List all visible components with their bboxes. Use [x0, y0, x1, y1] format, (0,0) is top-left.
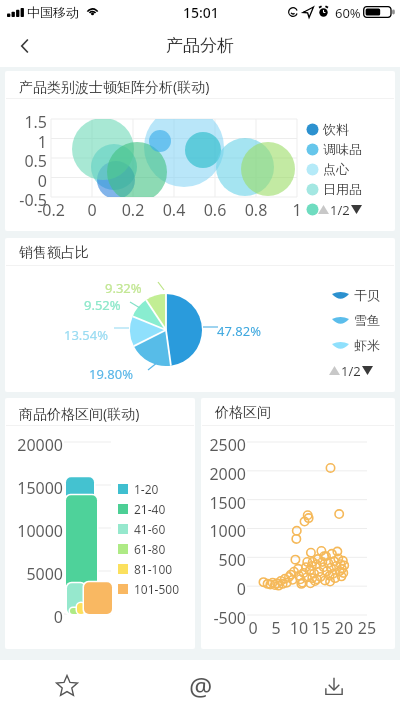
staticText: 日用品 — [323, 181, 362, 197]
staticText: 点心 — [323, 161, 349, 177]
staticText: 0 — [201, 578, 246, 600]
staticText: 产品类别波士顿矩阵分析(联动) — [19, 77, 210, 96]
staticText: 0.6 — [195, 199, 235, 221]
staticText: 15 — [306, 617, 336, 639]
staticText: 2500 — [201, 434, 246, 456]
staticText: 商品价格区间(联动) — [19, 404, 140, 423]
staticText: 0 — [238, 617, 268, 639]
staticText: 9.32% — [105, 279, 142, 297]
staticText: 500 — [201, 549, 246, 571]
staticText: 0.5 — [5, 150, 47, 172]
staticText: 0.8 — [236, 199, 276, 221]
button[interactable]: Page 1 of 2 — [317, 201, 363, 217]
button[interactable]: 产品类别波士顿矩阵分析(联动) — [5, 71, 395, 231]
button[interactable]: Favorite — [0, 660, 134, 711]
staticText: 中国移动 — [27, 4, 79, 20]
button[interactable]: 价格区间 — [201, 398, 395, 649]
staticText: 1000 — [201, 520, 246, 542]
staticText: 虾米 — [354, 337, 380, 353]
staticText: 47.82% — [217, 322, 262, 340]
staticText: 0 — [72, 199, 112, 221]
staticText: 价格区间 — [215, 404, 271, 422]
staticText: 9.52% — [84, 296, 121, 314]
staticText: 1/2 — [330, 201, 350, 217]
staticText: @ — [189, 668, 213, 703]
staticText: 10000 — [5, 520, 63, 542]
staticText: 20000 — [5, 434, 63, 456]
staticText: -0.2 — [31, 199, 71, 221]
staticText: 5 — [261, 617, 291, 639]
staticText: 25 — [352, 617, 382, 639]
staticText: 1-20 — [134, 481, 159, 497]
staticText: 产品分析 — [166, 35, 234, 56]
staticText: 13.54% — [64, 326, 109, 344]
staticText: 1 — [5, 131, 47, 153]
staticText: 1500 — [201, 492, 246, 514]
staticText: 10 — [284, 617, 314, 639]
button[interactable]: 商品价格区间(联动) — [5, 398, 195, 649]
button[interactable]: Download — [267, 660, 400, 711]
staticText: 2000 — [201, 463, 246, 485]
staticText: 0.2 — [113, 199, 153, 221]
button[interactable]: 销售额占比 — [5, 238, 395, 392]
staticText: -0.5 — [5, 189, 47, 211]
staticText: 销售额占比 — [19, 244, 89, 262]
staticText: 1 — [277, 199, 317, 221]
staticText: 雪鱼 — [354, 312, 380, 328]
staticText: 20 — [329, 617, 359, 639]
staticText: 0 — [5, 170, 47, 192]
staticText: 5000 — [5, 563, 63, 585]
staticText: 81-100 — [134, 561, 173, 577]
staticText: 0.4 — [154, 199, 194, 221]
button[interactable]: Mention — [134, 660, 267, 711]
staticText: 15000 — [5, 477, 63, 499]
staticText: 0 — [5, 606, 63, 628]
staticText: 41-60 — [134, 521, 166, 537]
staticText: 19.80% — [89, 365, 134, 383]
staticText: 调味品 — [323, 141, 362, 157]
staticText: 饮料 — [323, 121, 349, 137]
staticText: 干贝 — [354, 287, 380, 303]
staticText: 1.5 — [5, 111, 47, 133]
button[interactable]: Back — [8, 29, 42, 63]
staticText: 1/2 — [341, 362, 361, 378]
staticText: 21-40 — [134, 501, 166, 517]
staticText: -500 — [201, 607, 246, 629]
staticText: 101-500 — [134, 581, 180, 597]
staticText: 15:01 — [183, 3, 219, 22]
staticText: 61-80 — [134, 541, 166, 557]
button[interactable]: Page 1 of 2 — [328, 362, 374, 378]
staticText: 60% — [335, 4, 361, 22]
